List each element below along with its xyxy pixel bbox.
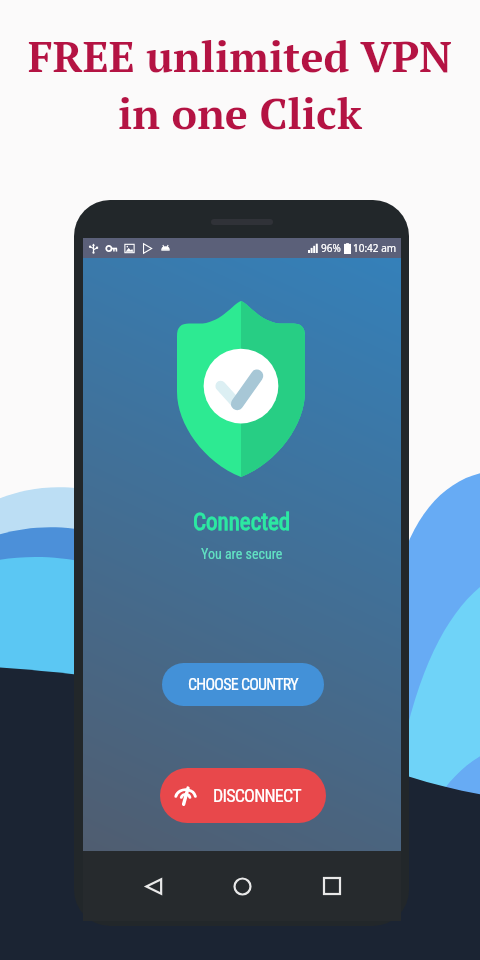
staticText: CHOOSE COUNTRY <box>188 675 298 694</box>
button[interactable]: DISCONNECT <box>160 768 326 823</box>
button[interactable]: Back <box>133 866 173 906</box>
staticText: Connected <box>193 509 291 536</box>
staticText: You are secure <box>201 546 283 562</box>
staticText: 96% <box>321 241 341 255</box>
button[interactable]: Home <box>222 866 262 906</box>
button[interactable]: Recent apps <box>312 866 352 906</box>
staticText: 10:42 am <box>353 241 397 255</box>
staticText: FREE unlimited VPN in one Click <box>28 27 452 141</box>
staticText: DISCONNECT <box>213 785 301 806</box>
button[interactable]: CHOOSE COUNTRY <box>162 663 324 706</box>
